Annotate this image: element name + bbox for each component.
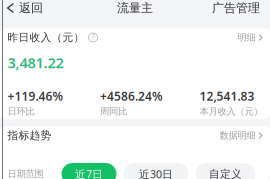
- staticText: 日期范围: [7, 168, 43, 179]
- button[interactable]: 自定义: [195, 163, 255, 179]
- staticText: 指标趋势: [7, 129, 51, 142]
- button[interactable]: 流量主: [117, 0, 153, 16]
- staticText: +4586.24%: [100, 88, 163, 104]
- button[interactable]: 数据明细: [219, 130, 262, 141]
- staticText: 周同比: [100, 106, 127, 117]
- staticText: 广告管理: [212, 1, 260, 15]
- staticText: 近7日: [75, 167, 103, 179]
- staticText: 近30日: [139, 167, 173, 179]
- button[interactable]: 广告管理: [212, 0, 270, 16]
- staticText: 昨日收入（元）: [7, 31, 84, 44]
- staticText: 本月收入（元）: [199, 106, 262, 117]
- staticText: 流量主: [117, 1, 153, 15]
- staticText: 数据明细: [219, 130, 255, 141]
- button[interactable]: 近7日: [61, 163, 116, 179]
- button[interactable]: 明细: [237, 32, 262, 43]
- staticText: 明细: [237, 32, 255, 43]
- staticText: +119.46%: [7, 88, 63, 104]
- staticText: 3,481.22: [7, 53, 63, 72]
- staticText: 12,541.83: [199, 88, 254, 104]
- button[interactable]: 近30日: [123, 163, 188, 179]
- staticText: ?: [91, 32, 94, 43]
- button[interactable]: 返回: [0, 0, 49, 16]
- staticText: 自定义: [209, 167, 242, 179]
- staticText: 日环比: [7, 106, 34, 117]
- staticText: 返回: [19, 1, 43, 15]
